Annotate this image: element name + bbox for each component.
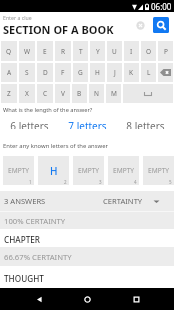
staticText: I	[130, 47, 133, 56]
button[interactable]: J	[107, 63, 122, 82]
button[interactable]: P	[158, 41, 173, 61]
staticText: 100% CERTAINTY	[4, 216, 66, 226]
staticText: Z	[7, 89, 11, 98]
staticText: CHAPTER	[4, 234, 41, 245]
button[interactable]: E	[37, 41, 53, 61]
staticText: D	[43, 68, 48, 77]
staticText: EMPTY	[78, 166, 100, 175]
button[interactable]: Z	[1, 84, 17, 103]
button[interactable]: O	[141, 41, 156, 61]
button[interactable]: EMPTY	[73, 156, 104, 185]
button[interactable]: A	[1, 63, 17, 82]
button[interactable]: CHAPTER	[0, 229, 174, 247]
staticText: 3	[99, 179, 102, 185]
button[interactable]: Home	[77, 289, 97, 309]
button[interactable]: F	[55, 63, 71, 82]
staticText: 66.67% CERTAINTY	[4, 252, 72, 262]
staticText: SECTION OF A BOOK	[3, 22, 114, 37]
button[interactable]: I	[124, 41, 139, 61]
staticText: EMPTY	[148, 166, 170, 175]
staticText: W	[24, 47, 31, 56]
staticText: EMPTY	[113, 166, 135, 175]
button[interactable]: B	[72, 84, 87, 103]
staticText: K	[129, 68, 134, 77]
staticText: C	[43, 89, 48, 98]
staticText: P	[164, 47, 168, 56]
staticText: 7 letters	[68, 119, 107, 129]
staticText: Enter a clue	[3, 14, 32, 21]
button[interactable]: EMPTY	[143, 156, 174, 185]
button[interactable]: Q	[1, 41, 17, 61]
staticText: 6 letters	[10, 119, 49, 129]
button[interactable]: Backspace	[158, 63, 173, 82]
staticText: E	[43, 47, 47, 56]
button[interactable]: N	[89, 84, 104, 103]
button[interactable]: T	[73, 41, 88, 61]
staticText: X	[25, 89, 29, 98]
staticText: CERTAINTY	[103, 196, 143, 206]
staticText: J	[114, 68, 116, 77]
staticText: What is the length of the answer?	[3, 106, 93, 114]
staticText: 8 letters	[126, 119, 165, 129]
staticText: G	[78, 68, 83, 77]
button[interactable]: M	[106, 84, 121, 103]
staticText: U	[112, 47, 117, 56]
button[interactable]: 8 letters	[116, 119, 174, 129]
staticText: B	[77, 89, 82, 98]
staticText: O	[146, 47, 152, 56]
button[interactable]: U	[107, 41, 122, 61]
button[interactable]: THOUGHT	[0, 266, 174, 288]
staticText: 1	[29, 179, 32, 185]
button[interactable]: W	[19, 41, 35, 61]
staticText: 4	[134, 179, 137, 185]
staticText: Y	[96, 47, 100, 56]
staticText: 3 ANSWERS	[4, 196, 46, 206]
button[interactable]: H	[38, 156, 69, 185]
staticText: R	[61, 47, 66, 56]
button[interactable]: R	[55, 41, 71, 61]
staticText: V	[61, 89, 65, 98]
button[interactable]: D	[37, 63, 53, 82]
button[interactable]: Recent apps	[126, 289, 146, 309]
staticText: S	[25, 68, 29, 77]
button[interactable]: C	[37, 84, 53, 103]
button[interactable]: CERTAINTY	[103, 194, 160, 208]
button[interactable]: Back	[29, 289, 49, 309]
staticText: F	[61, 68, 65, 77]
button[interactable]: K	[124, 63, 139, 82]
staticText: 06:00	[151, 1, 172, 12]
button[interactable]: Search	[153, 17, 169, 33]
staticText: Q	[6, 47, 12, 56]
button[interactable]: S	[19, 63, 35, 82]
staticText: L	[147, 68, 151, 77]
button[interactable]: L	[141, 63, 156, 82]
staticText: H	[95, 68, 100, 77]
staticText: EMPTY	[8, 166, 30, 175]
staticText: 5	[169, 179, 172, 185]
button[interactable]: EMPTY	[108, 156, 139, 185]
button[interactable]: V	[55, 84, 70, 103]
staticText: A	[7, 68, 12, 77]
button[interactable]: G	[73, 63, 88, 82]
staticText: T	[79, 47, 83, 56]
button[interactable]: H	[90, 63, 105, 82]
button[interactable]: 6 letters	[0, 119, 58, 129]
staticText: 2	[64, 179, 67, 185]
button[interactable]: EMPTY	[3, 156, 34, 185]
staticText: H	[50, 164, 58, 178]
button[interactable]: Space	[123, 84, 173, 103]
staticText: N	[94, 89, 99, 98]
button[interactable]: Y	[90, 41, 105, 61]
staticText: THOUGHT	[4, 273, 44, 284]
button[interactable]: X	[19, 84, 35, 103]
button[interactable]: Clear text	[136, 21, 145, 30]
button[interactable]: 7 letters	[58, 119, 116, 129]
staticText: Enter any known letters of the answer	[3, 142, 108, 150]
staticText: M	[111, 89, 117, 98]
